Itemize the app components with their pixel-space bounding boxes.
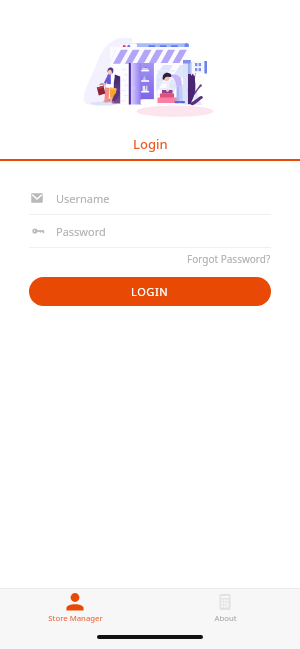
- staticText: About: [214, 613, 237, 624]
- button[interactable]: Password: [29, 223, 271, 248]
- button[interactable]: Forgot Password?: [187, 252, 271, 266]
- staticText: Forgot Password?: [187, 252, 271, 266]
- button[interactable]: Store Manager: [0, 589, 150, 649]
- staticText: Login: [133, 135, 168, 153]
- button[interactable]: Login: [123, 131, 178, 157]
- staticText: LOGIN: [131, 284, 169, 299]
- staticText: Username: [56, 191, 110, 206]
- button[interactable]: LOGIN: [29, 277, 271, 306]
- button[interactable]: Username: [29, 190, 271, 215]
- staticText: Store Manager: [48, 613, 103, 624]
- button[interactable]: About: [150, 589, 300, 649]
- staticText: Password: [56, 224, 106, 239]
